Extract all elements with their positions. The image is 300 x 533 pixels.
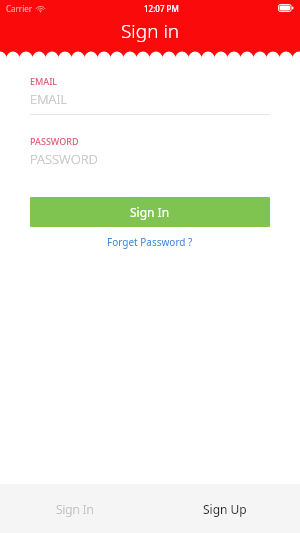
staticText: 12:07 PM — [144, 3, 179, 14]
button[interactable]: Forget Password ? — [101, 233, 199, 251]
staticText: PASSWORD — [30, 135, 79, 147]
staticText: Forget Password ? — [107, 235, 193, 249]
staticText: PASSWORD — [30, 150, 98, 168]
other: Wi-Fi signal — [36, 4, 45, 13]
staticText: Sign In — [56, 501, 94, 517]
staticText: EMAIL — [30, 90, 68, 108]
button[interactable]: PASSWORD — [30, 150, 270, 168]
button[interactable]: Sign In — [30, 197, 270, 227]
button[interactable]: Sign Up — [150, 484, 300, 533]
staticText: Sign in — [121, 18, 180, 44]
button[interactable]: Sign In — [0, 484, 150, 533]
staticText: Carrier — [6, 3, 33, 14]
button[interactable]: EMAIL — [30, 90, 270, 108]
staticText: Sign In — [130, 204, 170, 220]
other: Battery full — [278, 4, 294, 12]
staticText: EMAIL — [30, 75, 58, 87]
staticText: Sign Up — [203, 501, 247, 517]
